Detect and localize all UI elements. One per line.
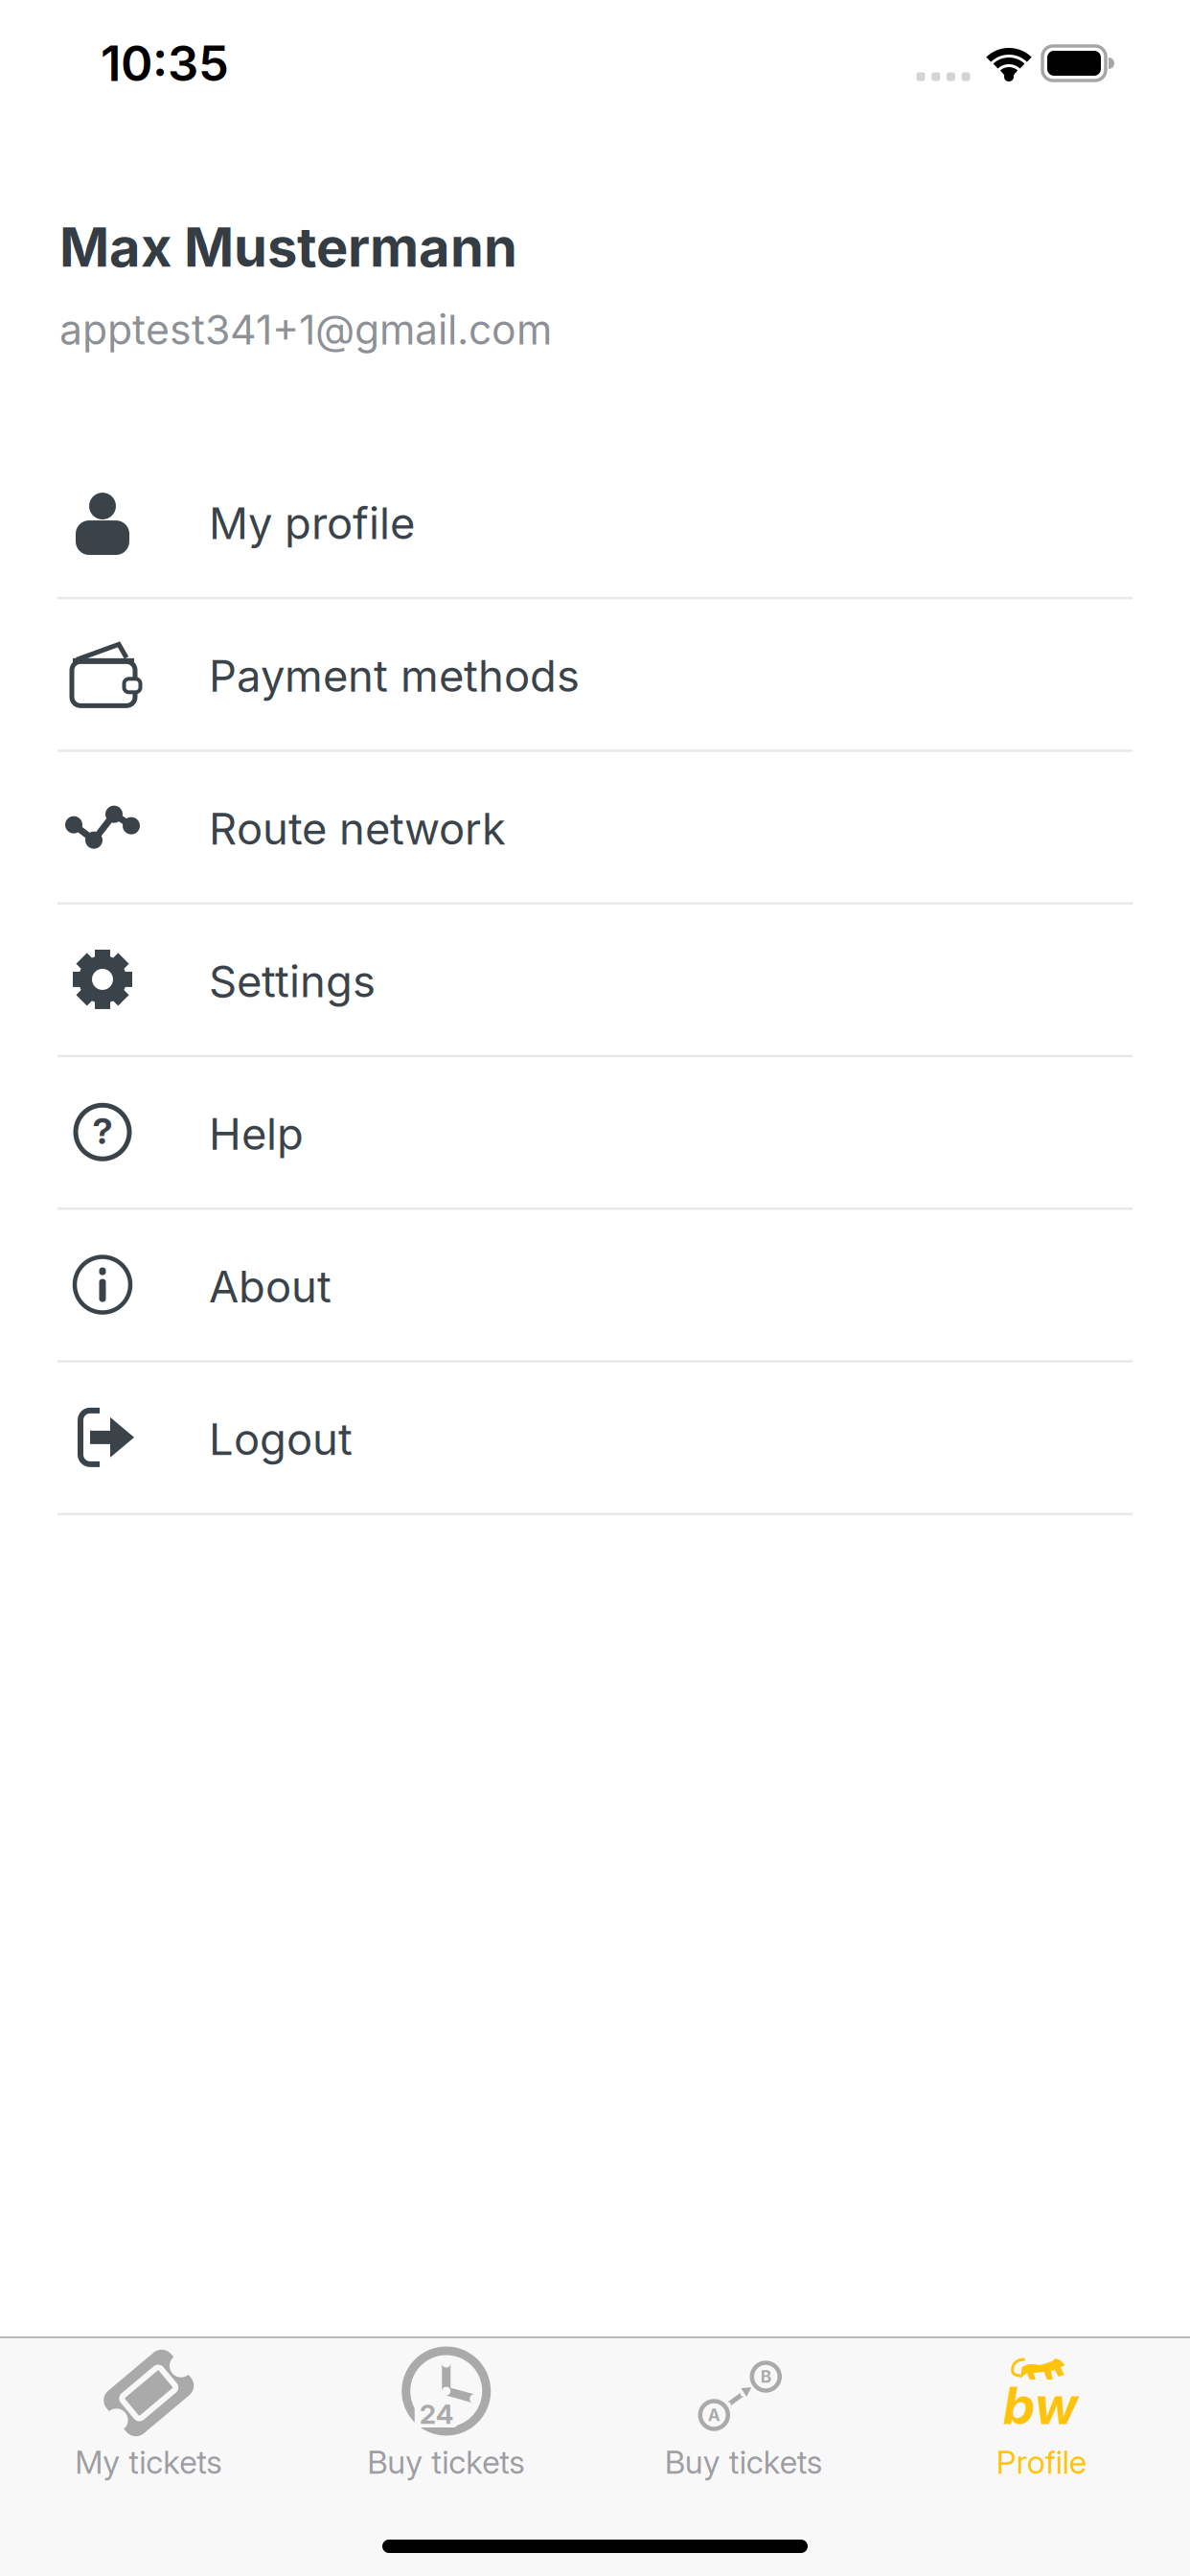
staticText: Help: [209, 1108, 304, 1160]
button[interactable]: My profile: [0, 447, 1190, 599]
staticText: Buy tickets: [665, 2443, 823, 2481]
button[interactable]: 24: [297, 2338, 595, 2541]
staticText: About: [209, 1260, 332, 1313]
staticText: A: [708, 2405, 720, 2425]
button[interactable]: ?: [0, 1057, 1190, 1210]
button[interactable]: Route network: [0, 752, 1190, 905]
staticText: Payment methods: [209, 650, 580, 702]
button[interactable]: bw: [892, 2338, 1190, 2541]
button[interactable]: About: [0, 1210, 1190, 1363]
staticText: Buy tickets: [367, 2443, 525, 2481]
staticText: B: [761, 2367, 771, 2387]
staticText: 24: [419, 2398, 454, 2430]
staticText: Max Mustermann: [59, 215, 517, 280]
staticText: Settings: [209, 955, 376, 1008]
button[interactable]: My tickets: [0, 2338, 297, 2541]
staticText: My profile: [209, 497, 415, 550]
staticText: My tickets: [75, 2443, 222, 2481]
button[interactable]: A: [595, 2338, 892, 2541]
staticText: Logout: [209, 1413, 353, 1466]
staticText: ?: [92, 1109, 113, 1153]
staticText: Profile: [996, 2443, 1086, 2481]
button[interactable]: Payment methods: [0, 599, 1190, 752]
staticText: 10:35: [101, 34, 229, 93]
button[interactable]: Logout: [0, 1363, 1190, 1515]
staticText: bw: [1003, 2374, 1078, 2436]
staticText: Route network: [209, 802, 506, 855]
button[interactable]: Settings: [0, 905, 1190, 1057]
staticText: apptest341+1@gmail.com: [59, 305, 552, 354]
